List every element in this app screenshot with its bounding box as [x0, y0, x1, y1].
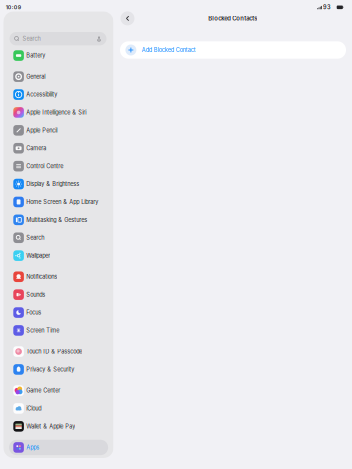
staticText: Privacy & Security	[26, 366, 74, 373]
button[interactable]: Search	[9, 229, 108, 247]
button[interactable]: Search	[9, 32, 106, 45]
staticText: iCloud	[26, 405, 41, 412]
button[interactable]: Notifications	[9, 268, 108, 286]
staticText: 93	[323, 4, 331, 11]
button[interactable]: Touch ID & Passcode	[9, 343, 108, 360]
staticText: Screen Time	[26, 327, 59, 334]
staticText: Touch ID & Passcode	[26, 348, 82, 355]
button[interactable]: Screen Time	[9, 321, 108, 339]
button[interactable]: Apps	[9, 438, 108, 456]
staticText: Control Centre	[26, 163, 63, 170]
staticText: Search	[23, 35, 41, 42]
staticText: Apple Pencil	[26, 127, 57, 134]
staticText: Home Screen & App Library	[26, 199, 98, 205]
staticText: Search	[26, 234, 44, 241]
staticText: Sounds	[26, 291, 45, 298]
button[interactable]: Wallpaper	[9, 247, 108, 265]
button[interactable]: Sounds	[9, 286, 108, 304]
button[interactable]: General	[9, 68, 108, 86]
staticText: Accessibility	[26, 91, 57, 98]
button[interactable]: Apple Pencil	[9, 121, 108, 139]
staticText: Focus	[26, 309, 41, 316]
staticText: Notifications	[26, 273, 57, 280]
button[interactable]: Accessibility	[9, 86, 108, 103]
staticText: Wallpaper	[26, 252, 50, 259]
staticText: Blocked Contacts	[208, 15, 257, 22]
button[interactable]: Apple Intelligence & Siri	[9, 103, 108, 121]
button[interactable]: Battery	[9, 47, 108, 64]
button[interactable]: Game Center	[9, 382, 108, 399]
staticText: Apple Intelligence & Siri	[26, 109, 86, 116]
staticText: Game Center	[26, 387, 60, 394]
button[interactable]: Add Blocked Contact	[120, 41, 346, 59]
button[interactable]: iCloud	[9, 399, 108, 417]
button[interactable]: Camera	[9, 139, 108, 157]
staticText: Camera	[26, 145, 46, 152]
button[interactable]: Multitasking & Gestures	[9, 211, 108, 229]
staticText: Apps	[26, 444, 39, 451]
staticText: General	[26, 73, 45, 80]
button[interactable]: Display & Brightness	[9, 175, 108, 193]
staticText: Wallet & Apple Pay	[26, 423, 75, 430]
button[interactable]: Home Screen & App Library	[9, 193, 108, 211]
button[interactable]: Control Centre	[9, 157, 108, 175]
staticText: Display & Brightness	[26, 181, 79, 187]
staticText: Add Blocked Contact	[142, 47, 196, 53]
button[interactable]: Back	[120, 11, 134, 25]
staticText: 10:09	[6, 4, 21, 11]
button[interactable]: Wallet & Apple Pay	[9, 417, 108, 435]
button[interactable]: Privacy & Security	[9, 360, 108, 378]
button[interactable]: Focus	[9, 304, 108, 321]
staticText: Multitasking & Gestures	[26, 216, 87, 223]
staticText: Battery	[26, 52, 45, 59]
